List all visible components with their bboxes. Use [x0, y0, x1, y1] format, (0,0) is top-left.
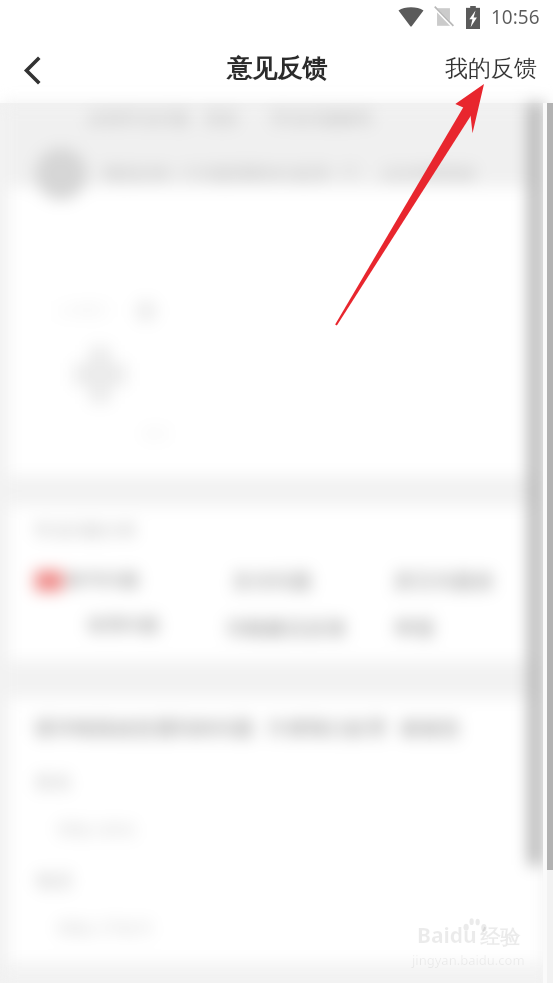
staticText: 支付问题	[232, 569, 312, 594]
staticText: 方便我们处理	[266, 716, 386, 741]
staticText: 意见反馈	[227, 53, 327, 84]
button[interactable]: Back	[8, 44, 56, 92]
staticText: jingyan.baidu.com	[412, 951, 525, 969]
staticText: 我的反馈	[445, 54, 537, 83]
staticText: 我想反馈一个问题需要你们处理一下	[103, 164, 359, 184]
staticText: 经验	[480, 925, 520, 950]
staticText: 点击查看更多	[381, 164, 477, 184]
staticText: 功能建议反馈	[226, 616, 346, 641]
staticText: 10:56	[491, 4, 540, 30]
staticText: 其它问题咨	[394, 569, 494, 594]
button[interactable]: 我的反馈	[433, 44, 553, 93]
staticText: 使用问题	[87, 614, 159, 637]
staticText: 谢谢您	[400, 716, 460, 741]
staticText: 举报	[394, 616, 434, 641]
staticText: 请详细描述您遇到的问题	[34, 716, 254, 741]
staticText: Baidu	[417, 921, 477, 950]
staticText: 账号问题	[67, 569, 139, 592]
